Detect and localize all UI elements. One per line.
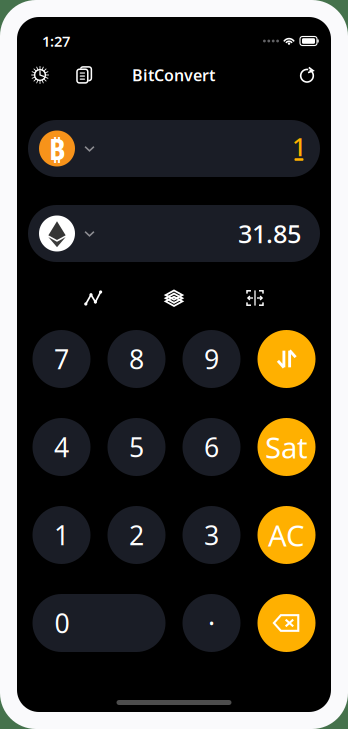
button[interactable]: 5 <box>107 418 165 476</box>
button[interactable]: 8 <box>107 330 165 388</box>
button[interactable]: History <box>69 60 99 90</box>
staticText: 7 <box>54 341 69 377</box>
staticText: Sat <box>265 427 308 466</box>
staticText: BitConvert <box>132 64 215 86</box>
button[interactable]: Swap currencies <box>257 330 315 388</box>
button[interactable]: Multi convert <box>143 283 204 313</box>
staticText: 9 <box>204 341 219 377</box>
button[interactable]: AC <box>257 506 315 564</box>
button[interactable]: 9 <box>182 330 240 388</box>
button[interactable]: 0 <box>32 594 165 652</box>
button[interactable]: · <box>182 594 240 652</box>
button[interactable]: Sat <box>257 418 315 476</box>
button[interactable]: 6 <box>182 418 240 476</box>
button[interactable]: Split view <box>224 283 285 313</box>
button[interactable]: 2 <box>107 506 165 564</box>
staticText: 8 <box>129 341 144 377</box>
button[interactable]: 4 <box>32 418 90 476</box>
staticText: 1:27 <box>42 31 70 51</box>
button[interactable]: Choose currency <box>28 120 104 177</box>
staticText: 31.85 <box>238 217 301 250</box>
button[interactable]: Choose currency <box>28 205 104 262</box>
staticText: 3 <box>204 517 219 553</box>
button[interactable]: Chart <box>62 283 123 313</box>
button[interactable]: Delete <box>257 594 315 652</box>
button[interactable]: Settings <box>25 60 55 90</box>
staticText: 2 <box>129 517 144 553</box>
staticText: · <box>208 605 215 641</box>
staticText: 5 <box>129 429 144 465</box>
button[interactable]: Refresh <box>292 60 322 90</box>
staticText: 1 <box>292 130 306 163</box>
staticText: AC <box>268 515 305 554</box>
button[interactable]: 7 <box>32 330 90 388</box>
staticText: ₿ <box>48 129 65 168</box>
button[interactable]: 3 <box>182 506 240 564</box>
staticText: 4 <box>54 429 69 465</box>
staticText: 0 <box>54 605 69 641</box>
staticText: 1 <box>54 517 69 553</box>
staticText: 6 <box>204 429 219 465</box>
button[interactable]: 1 <box>32 506 90 564</box>
